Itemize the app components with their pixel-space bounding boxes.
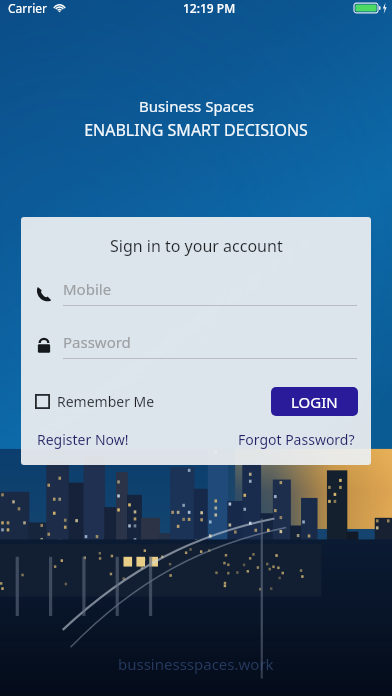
staticText: Forgot Password? xyxy=(238,430,355,449)
staticText: Mobile xyxy=(63,279,112,299)
staticText: Sign in to your account xyxy=(110,235,283,257)
staticText: Password xyxy=(63,332,131,352)
staticText: Register Now! xyxy=(37,430,129,449)
staticText: Business Spaces xyxy=(139,96,254,116)
staticText: Remember Me xyxy=(57,392,155,411)
button[interactable]: Register Now! xyxy=(35,428,131,451)
staticText: Carrier xyxy=(8,0,48,16)
staticText: ENABLING SMART DECISIONS xyxy=(84,119,308,141)
staticText: bussinessspaces.work xyxy=(118,654,274,674)
button[interactable]: Mobile xyxy=(35,279,357,306)
button[interactable]: Forgot Password? xyxy=(236,428,357,451)
staticText: LOGIN xyxy=(291,392,338,412)
button[interactable]: Remember Me xyxy=(34,388,156,415)
button[interactable]: LOGIN xyxy=(271,387,358,416)
button[interactable]: Password xyxy=(35,332,357,359)
staticText: 12:19 PM xyxy=(183,0,236,16)
